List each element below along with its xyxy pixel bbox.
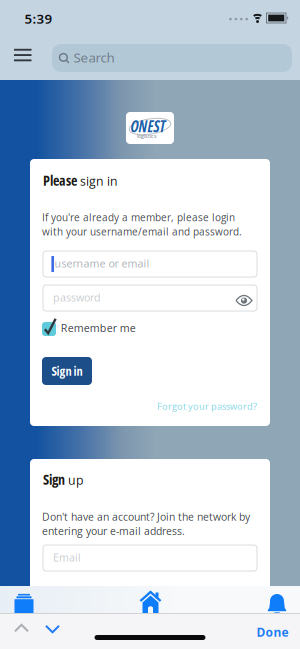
staticText: Remember me bbox=[61, 320, 136, 335]
staticText: ONEST bbox=[130, 116, 165, 137]
staticText: logistics bbox=[137, 132, 157, 140]
staticText: entering your e-mail address. bbox=[42, 524, 185, 538]
button[interactable]: Remember me bbox=[42, 318, 142, 338]
button[interactable] bbox=[252, 586, 300, 613]
button[interactable] bbox=[0, 35, 46, 80]
staticText: 5:39 bbox=[24, 10, 52, 27]
button[interactable]: Forgot your password? bbox=[157, 400, 257, 412]
staticText: username or email bbox=[54, 256, 149, 270]
button[interactable] bbox=[126, 586, 174, 613]
button[interactable]: username or email bbox=[43, 251, 257, 277]
staticText: Please sign in bbox=[43, 171, 118, 190]
staticText: Sign up bbox=[43, 470, 84, 489]
button[interactable] bbox=[0, 586, 48, 613]
button[interactable]: Done bbox=[247, 617, 297, 647]
staticText: with your username/email and password. bbox=[42, 225, 242, 238]
staticText: Email bbox=[53, 550, 81, 564]
staticText: Sign in bbox=[51, 362, 82, 380]
staticText: Forgot your password? bbox=[157, 400, 257, 412]
button[interactable]: Sign in bbox=[42, 357, 92, 385]
button[interactable]: Search bbox=[52, 44, 292, 72]
button[interactable] bbox=[7, 613, 37, 649]
button[interactable]: password bbox=[43, 285, 257, 311]
staticText: Don't have an account? Join the network … bbox=[42, 510, 250, 524]
staticText: Done bbox=[256, 624, 288, 640]
button[interactable]: Email bbox=[43, 545, 257, 571]
staticText: Search bbox=[73, 48, 114, 66]
button[interactable] bbox=[38, 613, 68, 649]
staticText: password bbox=[53, 290, 101, 304]
staticText: If you're already a member, please login bbox=[42, 210, 235, 224]
